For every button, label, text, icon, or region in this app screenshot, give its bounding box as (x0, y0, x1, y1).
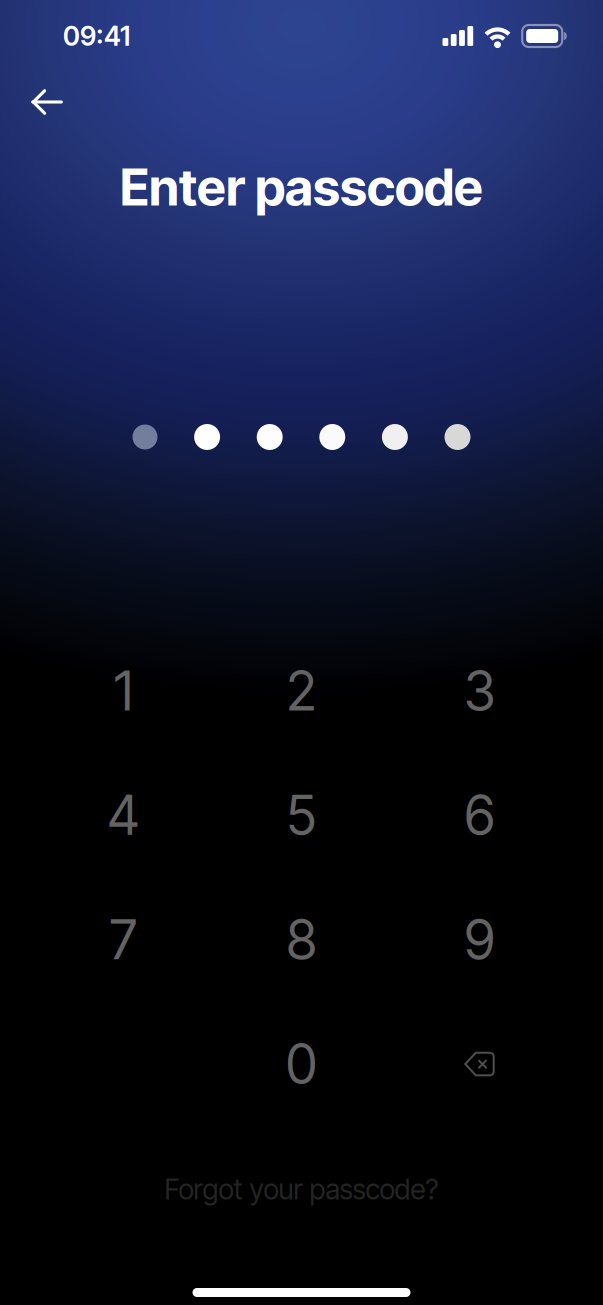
button[interactable]: 7 (34, 878, 212, 1002)
button[interactable]: Forgot your passcode? (164, 1167, 438, 1211)
staticText: 3 (464, 659, 495, 723)
button[interactable]: 2 (212, 629, 390, 753)
staticText: Enter passcode (120, 156, 483, 218)
staticText: 09:41 (63, 20, 130, 52)
staticText: 5 (286, 783, 316, 848)
staticText: Forgot your passcode? (164, 1172, 438, 1206)
button[interactable]: 8 (212, 878, 390, 1002)
button[interactable]: 1 (34, 629, 212, 753)
staticText: 2 (286, 659, 316, 723)
staticText: 6 (464, 783, 494, 848)
button[interactable]: 6 (390, 753, 568, 878)
staticText: 7 (109, 907, 137, 972)
button[interactable]: Delete (390, 1002, 568, 1126)
button[interactable]: 3 (390, 629, 568, 753)
staticText: 0 (286, 1032, 317, 1096)
staticText: 8 (286, 907, 316, 972)
button[interactable]: 5 (212, 753, 390, 878)
staticText: 4 (107, 783, 139, 848)
button[interactable]: 4 (34, 753, 212, 878)
staticText: 1 (114, 659, 133, 723)
button[interactable]: 9 (390, 878, 568, 1002)
button[interactable]: 0 (212, 1002, 390, 1126)
button[interactable]: Back (16, 76, 78, 128)
staticText: 9 (464, 907, 494, 972)
